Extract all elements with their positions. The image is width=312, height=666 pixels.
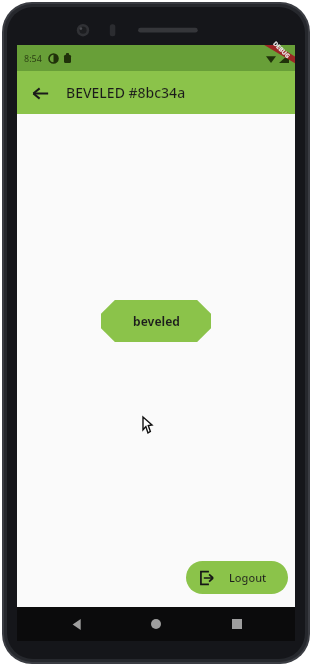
staticText: beveled xyxy=(133,313,180,329)
button[interactable]: beveled xyxy=(101,300,211,342)
staticText: 8:54 xyxy=(24,52,42,64)
button[interactable]: Recent apps xyxy=(215,607,259,641)
button[interactable]: Back xyxy=(54,607,98,641)
button[interactable]: Logout xyxy=(186,561,288,594)
staticText: DEBUG xyxy=(271,40,292,60)
button[interactable]: Back xyxy=(23,76,57,110)
staticText: BEVELED #8bc34a xyxy=(66,83,186,102)
button[interactable]: Home xyxy=(134,607,178,641)
staticText: Logout xyxy=(229,570,267,585)
